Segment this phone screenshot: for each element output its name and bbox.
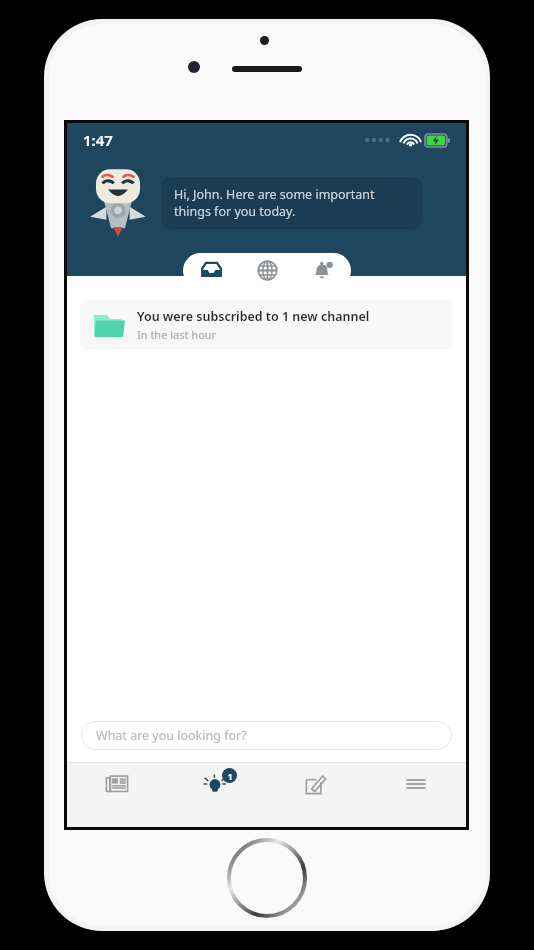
button[interactable]: Discover <box>239 253 295 288</box>
button[interactable]: Notifications <box>295 253 351 288</box>
button[interactable]: What are you looking for? <box>81 721 452 750</box>
staticText: 1:47 <box>83 130 113 150</box>
button[interactable]: Compose <box>266 762 366 806</box>
staticText: Hi, John. Here are some important things… <box>174 186 409 220</box>
button[interactable]: News <box>67 762 166 806</box>
button[interactable]: Inbox <box>183 253 239 288</box>
button[interactable]: Menu <box>366 762 466 806</box>
staticText: 1 <box>227 770 233 782</box>
staticText: You were subscribed to 1 new channel <box>137 308 370 325</box>
staticText: What are you looking for? <box>96 727 247 744</box>
button[interactable]: Ideas <box>166 762 266 806</box>
button[interactable]: You were subscribed to 1 new channel <box>80 300 453 349</box>
staticText: In the last hour <box>137 327 217 342</box>
